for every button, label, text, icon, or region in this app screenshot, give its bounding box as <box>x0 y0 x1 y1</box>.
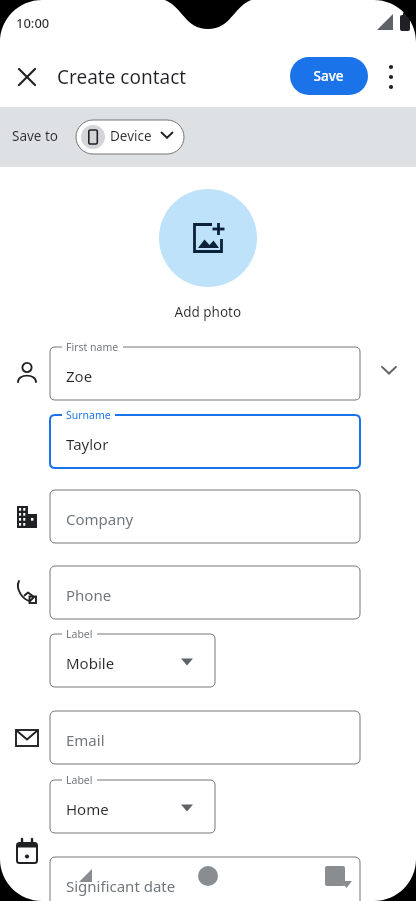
button[interactable]: Add photo <box>148 190 268 322</box>
button[interactable] <box>50 634 215 687</box>
button[interactable]: Expand name fields <box>370 351 410 391</box>
button[interactable] <box>50 566 360 619</box>
button[interactable]: More options <box>373 54 411 100</box>
button[interactable] <box>50 857 360 901</box>
button[interactable] <box>50 490 360 543</box>
button[interactable] <box>76 120 184 154</box>
button[interactable] <box>50 415 360 468</box>
button[interactable]: Close <box>9 54 55 100</box>
button[interactable] <box>50 711 360 764</box>
button[interactable] <box>50 780 215 833</box>
button[interactable] <box>290 57 368 95</box>
button[interactable] <box>50 347 360 400</box>
